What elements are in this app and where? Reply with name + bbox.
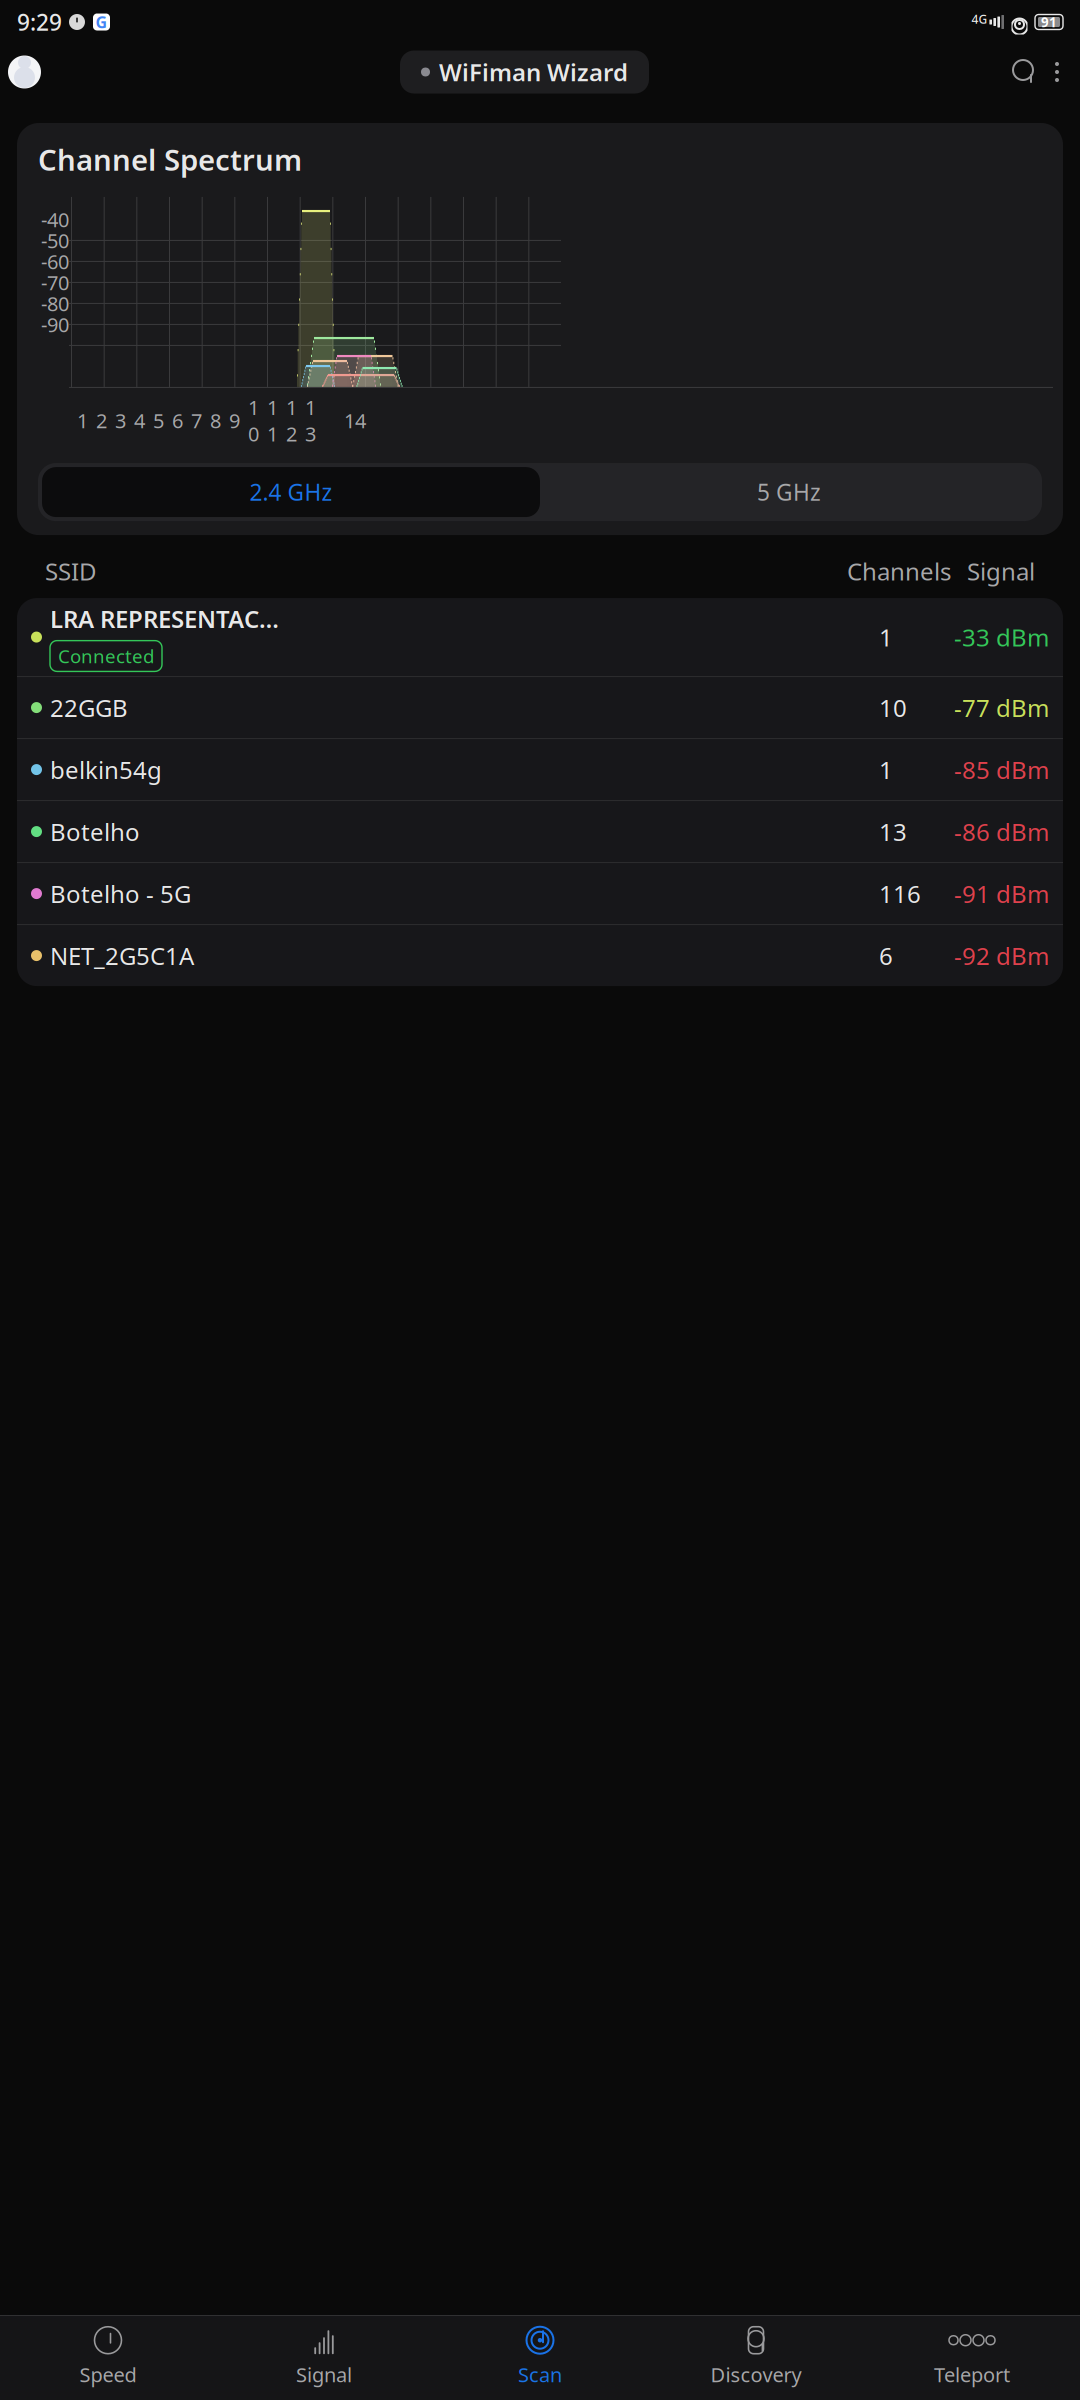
button[interactable]: LRA REPRESENTAC… [17,598,1063,676]
staticText: -86 dBm [954,816,1049,847]
staticText: 22GGB [50,692,128,723]
staticText: Scan [518,2361,562,2388]
button[interactable]: Scan [432,2326,648,2388]
staticText: 9 [229,407,240,434]
staticText: 1 [77,407,88,434]
staticText: 5 GHz [757,477,821,507]
staticText: 6 [172,407,183,434]
staticText: Channel Spectrum [38,140,302,179]
staticText: LRA REPRESENTAC… [50,603,279,635]
staticText: Botelho - 5G [50,878,191,909]
staticText: 2 [96,407,107,434]
staticText: Signal [967,555,1035,587]
staticText: WiFiman Wizard [439,56,628,88]
staticText: 6 [879,940,893,971]
staticText: -70 [41,269,69,296]
staticText: -91 dBm [954,878,1049,909]
button[interactable]: More options [1042,55,1072,89]
staticText: Signal [296,2361,352,2388]
staticText: -33 dBm [954,621,1049,653]
staticText: 11 [267,394,278,447]
staticText: Speed [79,2361,136,2388]
staticText: belkin54g [50,754,162,785]
staticText: -85 dBm [954,754,1049,785]
staticText: SSID [45,555,97,587]
button[interactable]: Account [8,55,41,88]
button[interactable]: Signal [216,2326,432,2388]
staticText: Botelho [50,816,140,847]
button[interactable]: Search [1008,55,1042,89]
button[interactable]: WiFiman Wizard [400,50,649,93]
button[interactable]: 2.4 GHz [42,467,540,517]
button[interactable]: Discovery [648,2326,864,2388]
button[interactable]: 22GGB [17,677,1063,738]
button[interactable]: Speed [0,2326,216,2388]
staticText: Channels [847,555,951,587]
staticText: 1 [879,754,893,785]
button[interactable]: belkin54g [17,739,1063,800]
button[interactable]: NET_2G5C1A [17,925,1063,986]
staticText: Discovery [710,2361,801,2388]
staticText: Connected [58,644,154,668]
staticText: G [95,11,107,33]
button[interactable]: Botelho - 5G [17,863,1063,924]
staticText: -90 [41,311,69,338]
staticText: 13 [879,816,907,847]
staticText: 4G [971,11,987,27]
staticText: 91 [1041,13,1057,31]
staticText: Teleport [934,2361,1010,2388]
staticText: 12 [286,394,297,447]
button[interactable]: Teleport [864,2326,1080,2388]
staticText: 8 [210,407,221,434]
staticText: -80 [41,290,69,317]
staticText: NET_2G5C1A [50,940,194,971]
staticText: 10 [879,692,907,723]
button[interactable]: Botelho [17,801,1063,862]
staticText: 2.4 GHz [249,477,332,507]
staticText: 4 [134,407,145,434]
staticText: 1 [879,621,893,653]
staticText: 9:29 [17,7,62,37]
staticText: 13 [305,394,316,447]
button[interactable]: 5 GHz [540,467,1038,517]
staticText: 116 [879,878,921,909]
staticText: -92 dBm [954,940,1049,971]
staticText: 14 [344,407,366,434]
staticText: 7 [191,407,202,434]
staticText: 10 [248,394,259,447]
staticText: 3 [115,407,126,434]
staticText: -50 [41,227,69,254]
staticText: -60 [41,248,69,275]
staticText: -77 dBm [954,692,1049,723]
staticText: 5 [153,407,164,434]
staticText: -40 [41,206,69,233]
